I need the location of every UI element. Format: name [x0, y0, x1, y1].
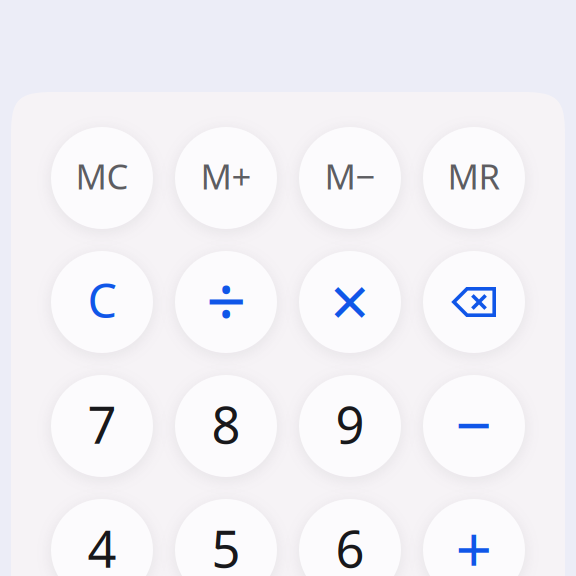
button[interactable]: M−	[299, 127, 401, 229]
button[interactable]: MC	[51, 127, 153, 229]
staticText: 6	[335, 514, 364, 576]
button[interactable]: C	[51, 251, 153, 353]
staticText: 4	[87, 514, 116, 576]
button[interactable]: MR	[423, 127, 525, 229]
staticText: 5	[211, 514, 240, 576]
staticText: ÷	[206, 253, 246, 347]
staticText: 9	[335, 390, 364, 458]
staticText: 7	[87, 390, 116, 458]
staticText: ×	[330, 254, 370, 346]
button[interactable]: ÷	[175, 251, 277, 353]
button[interactable]: 5	[175, 499, 277, 576]
staticText: MC	[75, 153, 128, 199]
button[interactable]: 9	[299, 375, 401, 477]
staticText: M−	[324, 153, 375, 199]
staticText: +	[455, 505, 492, 576]
staticText: C	[87, 269, 116, 331]
staticText: MR	[447, 153, 500, 199]
button[interactable]: 6	[299, 499, 401, 576]
button[interactable]: +	[423, 499, 525, 576]
button[interactable]: ×	[299, 251, 401, 353]
staticText: 8	[211, 390, 240, 458]
button[interactable]: 7	[51, 375, 153, 477]
button[interactable]: M+	[175, 127, 277, 229]
staticText: M+	[200, 153, 251, 199]
button[interactable]: 8	[175, 375, 277, 477]
staticText: −	[455, 381, 492, 466]
button[interactable]: Delete	[423, 251, 525, 353]
button[interactable]: −	[423, 375, 525, 477]
button[interactable]: 4	[51, 499, 153, 576]
